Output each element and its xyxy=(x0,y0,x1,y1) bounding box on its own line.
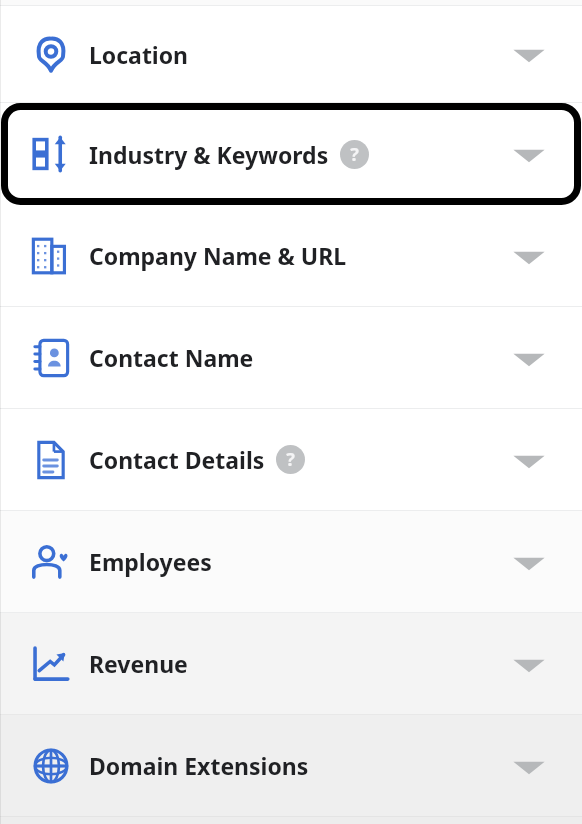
button[interactable]: Expand Industry & Keywords xyxy=(502,127,556,181)
staticText: Contact Name xyxy=(89,342,254,373)
button[interactable]: Company Name & URL xyxy=(0,205,582,306)
button[interactable]: Domain Extensions xyxy=(0,715,582,816)
button[interactable]: Location xyxy=(0,6,582,102)
staticText: ? xyxy=(286,447,295,472)
button[interactable]: Expand Revenue xyxy=(502,637,556,691)
button[interactable]: Expand Company Name & URL xyxy=(502,229,556,283)
button[interactable]: Expand Contact Details xyxy=(502,433,556,487)
button[interactable]: Expand Contact Name xyxy=(502,331,556,385)
staticText: Industry & Keywords xyxy=(89,139,329,170)
staticText: Revenue xyxy=(89,648,188,679)
button[interactable]: Expand Employees xyxy=(502,535,556,589)
staticText: Employees xyxy=(89,546,212,577)
staticText: ? xyxy=(350,142,359,167)
button[interactable]: Expand Location xyxy=(502,27,556,81)
staticText: Location xyxy=(89,39,189,70)
button[interactable]: Contact Name xyxy=(0,307,582,408)
staticText: Company Name & URL xyxy=(89,240,347,271)
button[interactable]: Expand Domain Extensions xyxy=(502,739,556,793)
button[interactable]: Contact Details xyxy=(0,409,582,510)
staticText: Domain Extensions xyxy=(89,750,309,781)
staticText: Contact Details xyxy=(89,444,265,475)
button[interactable]: Employees xyxy=(0,511,582,612)
button[interactable]: Revenue xyxy=(0,613,582,714)
button[interactable]: Industry & Keywords xyxy=(0,103,582,205)
